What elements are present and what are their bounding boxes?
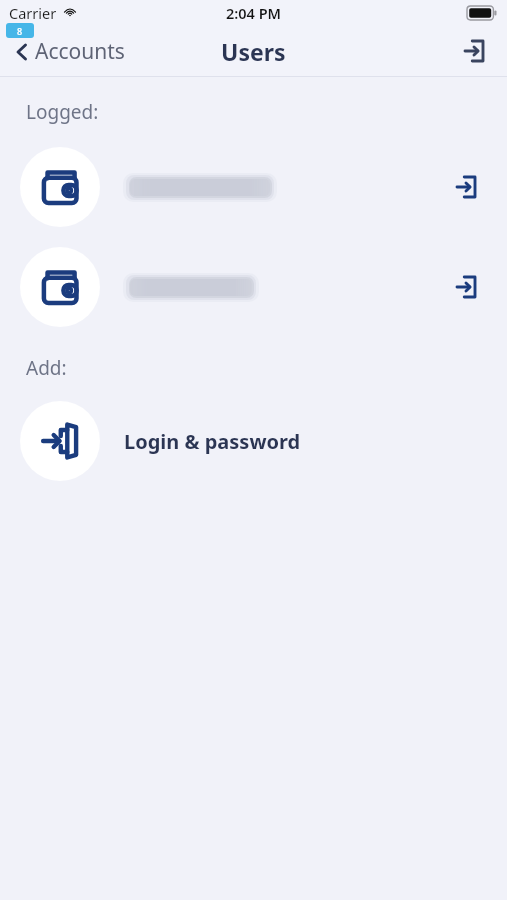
button[interactable]: Log out <box>455 31 495 71</box>
staticText: Add: <box>26 355 67 381</box>
button[interactable]: Log out user <box>0 247 507 327</box>
staticText: Carrier <box>9 3 57 23</box>
button[interactable]: Log out user <box>445 265 489 309</box>
staticText: 2:04 PM <box>226 3 282 23</box>
staticText: Users <box>221 36 286 67</box>
button[interactable]: Log out user <box>445 165 489 209</box>
staticText: Accounts <box>35 37 125 66</box>
button[interactable]: Log out user <box>0 147 507 227</box>
button[interactable]: Accounts <box>10 37 125 66</box>
staticText: Login & password <box>124 428 301 455</box>
staticText: 8 <box>17 25 23 37</box>
button[interactable]: Login & password <box>0 401 507 481</box>
staticText: Logged: <box>26 99 99 125</box>
